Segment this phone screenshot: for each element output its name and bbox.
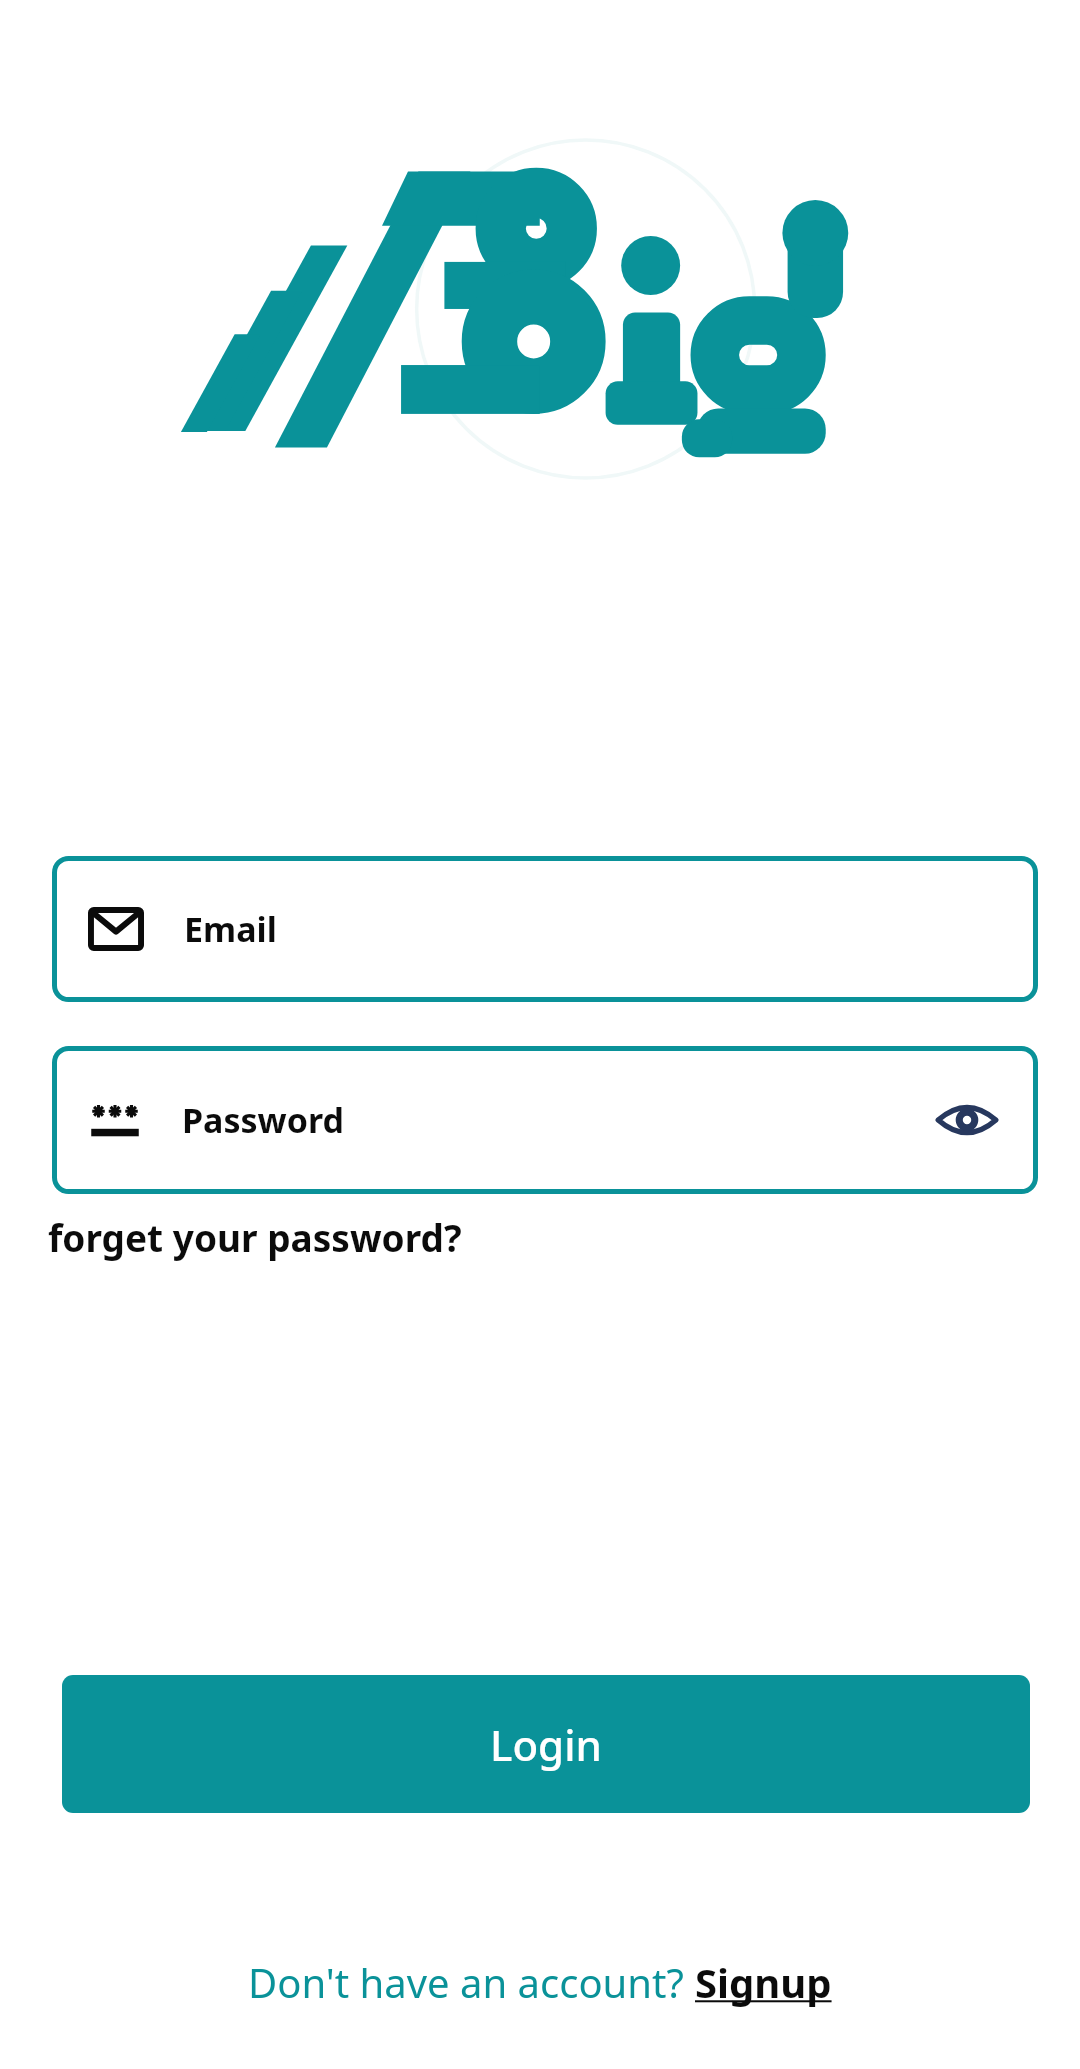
staticText: Signup <box>695 1955 832 2009</box>
staticText: Don't have an account? <box>248 1955 695 2009</box>
staticText: Password <box>182 1097 344 1143</box>
button[interactable]: Login <box>62 1675 1030 1813</box>
button[interactable]: Password <box>52 1046 1038 1194</box>
button[interactable]: Email <box>52 856 1038 1002</box>
staticText: Email <box>184 906 277 952</box>
button[interactable]: Don't have an account? <box>248 1955 832 2009</box>
staticText: Login <box>490 1716 602 1773</box>
button[interactable]: forget your password? <box>44 1206 466 1268</box>
staticText: forget your password? <box>48 1212 462 1262</box>
button[interactable]: Show password <box>930 1083 1004 1157</box>
